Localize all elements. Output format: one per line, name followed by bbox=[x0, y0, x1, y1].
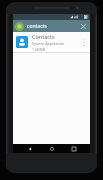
button[interactable]: Home bbox=[46, 144, 57, 153]
button[interactable]: Back bbox=[24, 144, 35, 153]
button[interactable]: App icon bbox=[13, 20, 90, 32]
staticText: contacts bbox=[27, 23, 79, 30]
button[interactable]: More options bbox=[80, 33, 87, 51]
button[interactable]: Recent apps bbox=[68, 144, 79, 153]
button[interactable]: Contacts bbox=[13, 32, 90, 52]
button[interactable]: Clear search bbox=[79, 22, 88, 31]
staticText: Contacts bbox=[32, 33, 55, 40]
button[interactable]: App icon bbox=[15, 22, 24, 31]
staticText: 1.58 MB bbox=[32, 47, 45, 52]
staticText: System Application bbox=[32, 41, 65, 46]
